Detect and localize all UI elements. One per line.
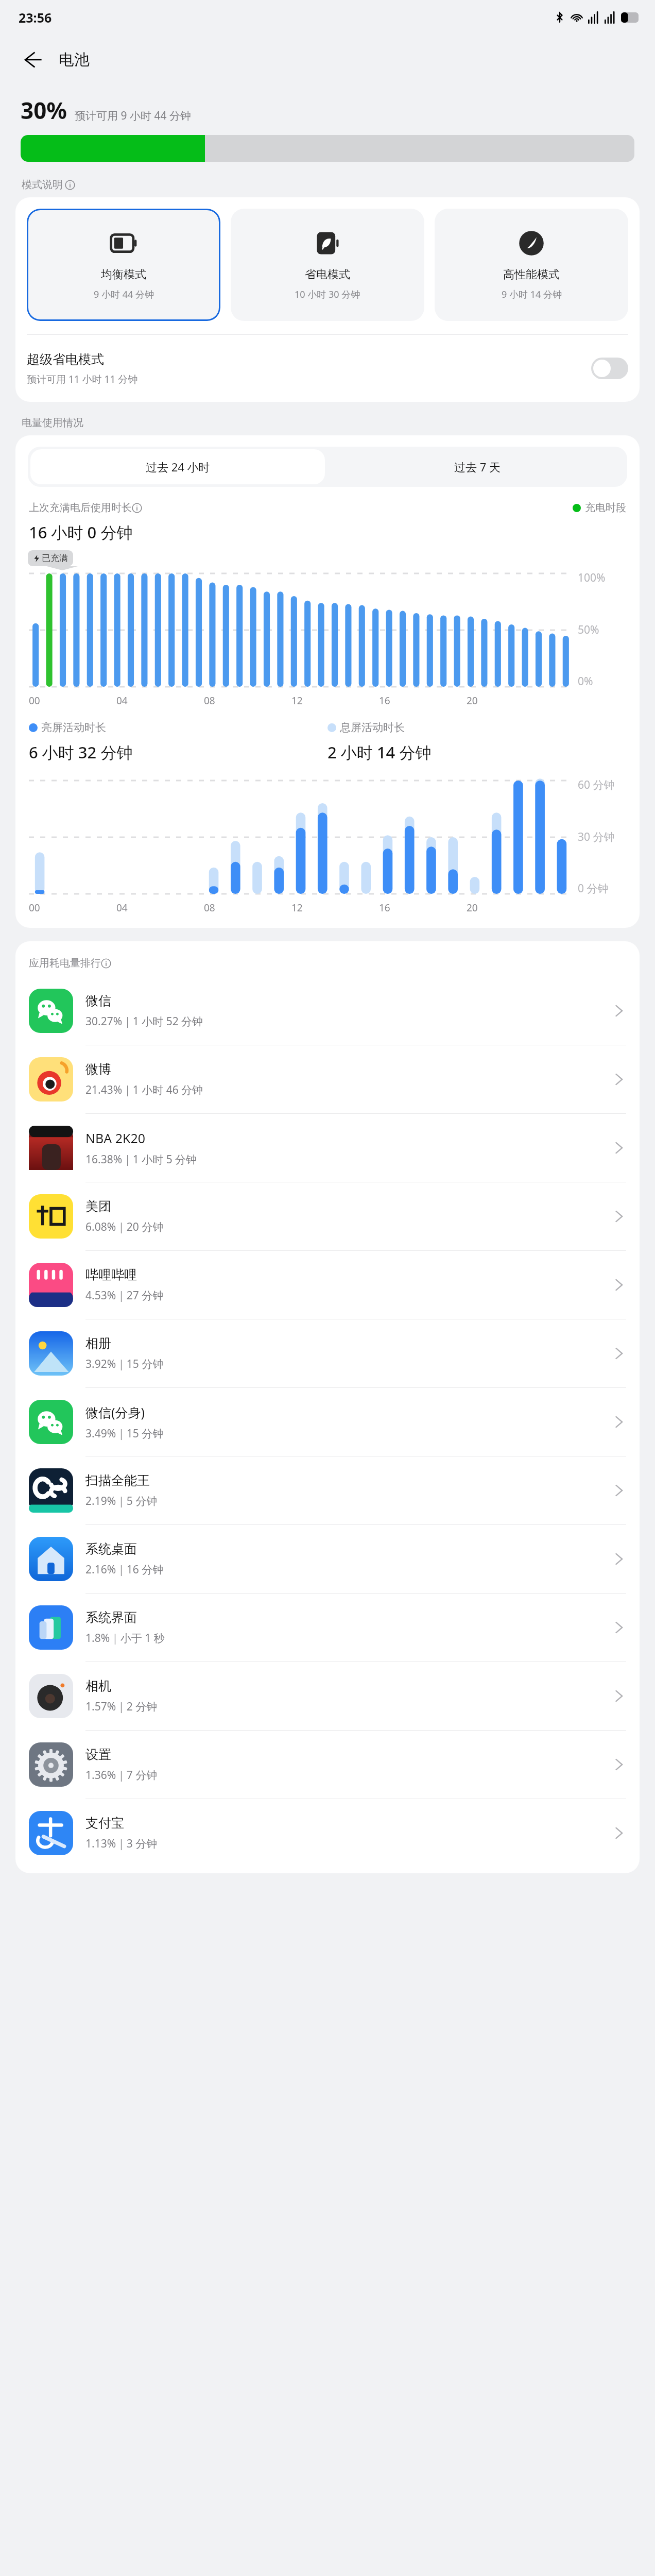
staticText: 亮屏活动时长 — [41, 721, 106, 734]
button[interactable]: 系统桌面 — [15, 1525, 640, 1593]
staticText: 2 小时 14 分钟 — [327, 741, 626, 763]
staticText: 30.27%｜1 小时 52 分钟 — [85, 1014, 203, 1029]
staticText: 支付宝 — [85, 1815, 124, 1831]
staticText: 4.53%｜27 分钟 — [85, 1288, 164, 1303]
button[interactable]: 过去 7 天 — [327, 447, 627, 487]
staticText: 已充满 — [42, 553, 68, 564]
button[interactable]: 相册 — [15, 1319, 640, 1387]
button[interactable]: 扫描全能王 — [15, 1456, 640, 1524]
staticText: 省电模式 — [305, 267, 350, 282]
staticText: 9 小时 44 分钟 — [94, 288, 154, 301]
staticText: 30 分钟 — [578, 829, 615, 844]
staticText: 微信 — [85, 993, 111, 1009]
staticText: 1.8%｜小于 1 秒 — [85, 1631, 165, 1646]
staticText: 均衡模式 — [101, 267, 146, 282]
staticText: 1.36%｜7 分钟 — [85, 1768, 158, 1783]
staticText: 过去 24 小时 — [146, 459, 210, 474]
staticText: 应用耗电量排行 — [29, 957, 101, 970]
staticText: 1.13%｜3 分钟 — [85, 1836, 158, 1851]
staticText: 超级省电模式 — [27, 351, 104, 367]
staticText: 04 — [116, 694, 128, 707]
staticText: 20 — [467, 901, 478, 914]
button[interactable]: 微信 — [15, 977, 640, 1045]
staticText: 上次充满电后使用时长 — [29, 501, 132, 514]
staticText: 04 — [116, 901, 128, 914]
staticText: 100% — [578, 570, 606, 585]
staticText: 0 分钟 — [578, 881, 609, 896]
button[interactable]: 高性能模式 — [435, 209, 628, 321]
staticText: 1.57%｜2 分钟 — [85, 1699, 158, 1714]
staticText: 预计可用 11 小时 11 分钟 — [27, 372, 138, 386]
staticText: 系统界面 — [85, 1609, 137, 1625]
staticText: 息屏活动时长 — [340, 721, 405, 734]
staticText: 16 — [379, 694, 390, 707]
staticText: 电池 — [59, 50, 90, 70]
staticText: 设置 — [85, 1747, 111, 1762]
staticText: 12 — [291, 901, 303, 914]
staticText: NBA 2K20 — [85, 1129, 146, 1147]
staticText: 00 — [29, 694, 40, 707]
staticText: 21.43%｜1 小时 46 分钟 — [85, 1082, 203, 1097]
staticText: 6.08%｜20 分钟 — [85, 1219, 164, 1234]
staticText: 过去 7 天 — [454, 459, 501, 474]
button[interactable]: 设置 — [15, 1731, 640, 1799]
staticText: 哔哩哔哩 — [85, 1267, 137, 1283]
staticText: 3.92%｜15 分钟 — [85, 1357, 164, 1371]
button[interactable]: 返回 — [13, 41, 50, 78]
staticText: 08 — [204, 694, 215, 707]
button[interactable]: 哔哩哔哩 — [15, 1251, 640, 1319]
staticText: 23:56 — [19, 9, 52, 26]
staticText: 模式说明 — [22, 178, 63, 191]
button[interactable]: 系统界面 — [15, 1594, 640, 1662]
staticText: 16 — [379, 901, 390, 914]
staticText: 16 小时 0 分钟 — [29, 521, 133, 543]
staticText: 60 分钟 — [578, 777, 615, 792]
staticText: 12 — [291, 694, 303, 707]
staticText: 相册 — [85, 1335, 111, 1351]
staticText: 充电时段 — [585, 501, 626, 514]
staticText: 相机 — [85, 1678, 111, 1694]
staticText: 00 — [29, 901, 40, 914]
button[interactable]: 超级省电模式 — [27, 335, 628, 402]
staticText: 9 小时 14 分钟 — [502, 288, 562, 301]
staticText: 2.19%｜5 分钟 — [85, 1494, 158, 1509]
button[interactable]: 省电模式 — [231, 209, 424, 321]
staticText: 08 — [204, 901, 215, 914]
button[interactable]: NBA 2K20 — [15, 1114, 640, 1182]
button[interactable]: 过去 24 小时 — [30, 449, 325, 484]
button[interactable]: 支付宝 — [15, 1799, 640, 1867]
staticText: 预计可用 9 小时 44 分钟 — [75, 108, 191, 123]
staticText: 电量使用情况 — [22, 416, 83, 429]
staticText: 3.49%｜15 分钟 — [85, 1426, 164, 1441]
staticText: 20 — [467, 694, 478, 707]
staticText: 16.38%｜1 小时 5 分钟 — [85, 1152, 197, 1167]
button[interactable]: 均衡模式 — [27, 209, 220, 321]
staticText: 2.16%｜16 分钟 — [85, 1562, 164, 1577]
staticText: 微信(分身) — [85, 1403, 145, 1421]
staticText: 美团 — [85, 1198, 111, 1214]
button[interactable]: 微信(分身) — [15, 1388, 640, 1456]
staticText: 10 小时 30 分钟 — [295, 288, 360, 301]
staticText: 30% — [21, 95, 67, 126]
staticText: 高性能模式 — [503, 267, 560, 282]
staticText: 0% — [578, 674, 593, 689]
staticText: 微博 — [85, 1061, 111, 1077]
button[interactable]: 微博 — [15, 1045, 640, 1113]
staticText: 6 小时 32 分钟 — [29, 741, 327, 763]
button[interactable]: 相机 — [15, 1662, 640, 1730]
staticText: 系统桌面 — [85, 1541, 137, 1557]
staticText: 扫描全能王 — [85, 1472, 150, 1488]
staticText: 50% — [578, 622, 599, 637]
button[interactable]: 美团 — [15, 1182, 640, 1250]
